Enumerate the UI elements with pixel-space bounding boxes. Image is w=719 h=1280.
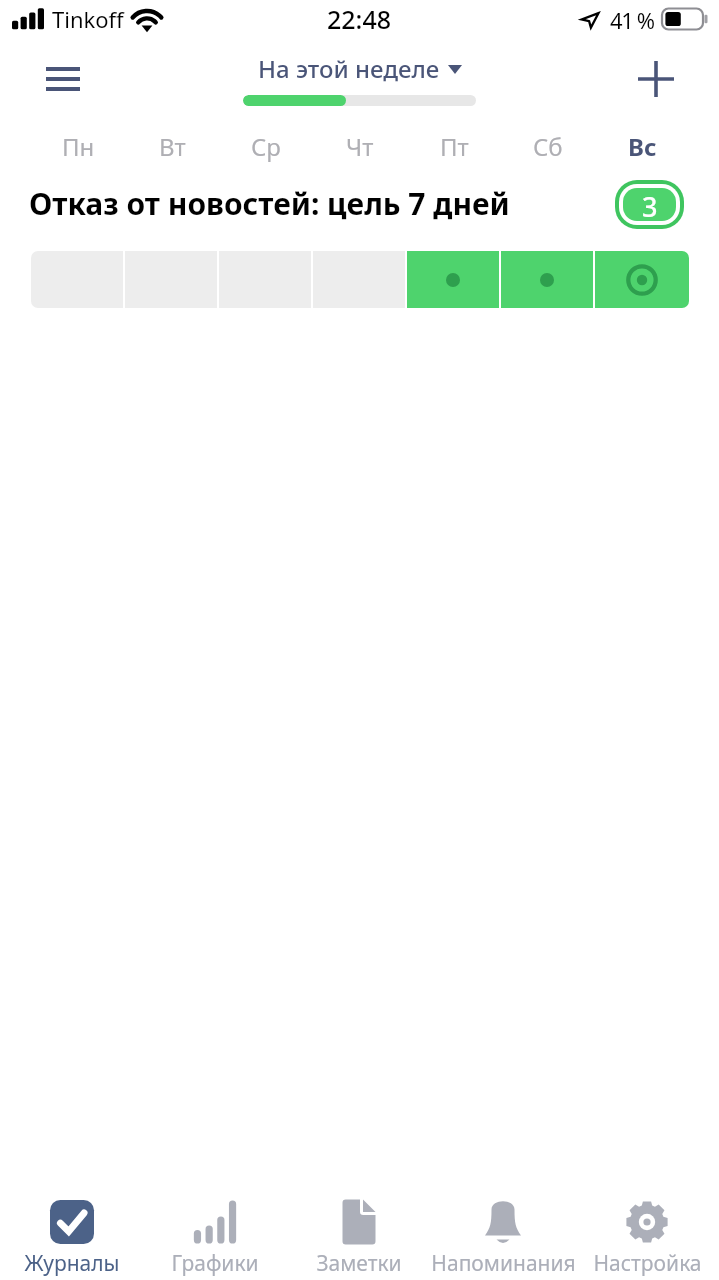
button[interactable]: Настройка <box>562 1196 719 1280</box>
staticText: Ср <box>251 130 281 163</box>
staticText: Настройка <box>593 1249 702 1278</box>
staticText: Отказ от новостей: цель 7 дней <box>29 183 615 224</box>
button[interactable]: Чт <box>313 124 407 168</box>
button[interactable]: Menu <box>41 57 85 101</box>
button[interactable]: Day 6 <box>501 251 595 308</box>
button[interactable]: Day 5 <box>407 251 501 308</box>
button[interactable]: Add <box>629 52 683 106</box>
staticText: Tinkoff <box>52 4 124 34</box>
staticText: Сб <box>533 130 563 163</box>
button[interactable]: Streak 3 days <box>623 188 676 221</box>
staticText: 41 % <box>610 5 654 35</box>
button[interactable]: Вт <box>125 124 219 168</box>
staticText: Графики <box>171 1249 259 1278</box>
staticText: Журналы <box>24 1249 120 1278</box>
button[interactable]: Ср <box>219 124 313 168</box>
staticText: 3 <box>642 188 658 221</box>
staticText: Чт <box>346 130 374 163</box>
staticText: Вс <box>628 130 657 163</box>
staticText: На этой неделе <box>258 52 440 85</box>
staticText: 22:48 <box>327 2 392 36</box>
staticText: Заметки <box>316 1249 402 1278</box>
button[interactable]: Пт <box>407 124 501 168</box>
button[interactable]: На этой неделе <box>258 52 462 85</box>
staticText: Вт <box>159 130 186 163</box>
button[interactable]: Day 7 <box>595 251 689 308</box>
button[interactable]: Вс <box>595 124 689 168</box>
button[interactable]: Заметки <box>274 1196 444 1280</box>
staticText: Пт <box>440 130 469 163</box>
staticText: Пн <box>62 130 95 163</box>
staticText: Напоминания <box>431 1249 576 1278</box>
button[interactable]: Напоминания <box>418 1196 588 1280</box>
button[interactable]: Графики <box>130 1196 300 1280</box>
button[interactable]: Сб <box>501 124 595 168</box>
button[interactable]: Журналы <box>0 1196 157 1280</box>
button[interactable]: Пн <box>31 124 125 168</box>
